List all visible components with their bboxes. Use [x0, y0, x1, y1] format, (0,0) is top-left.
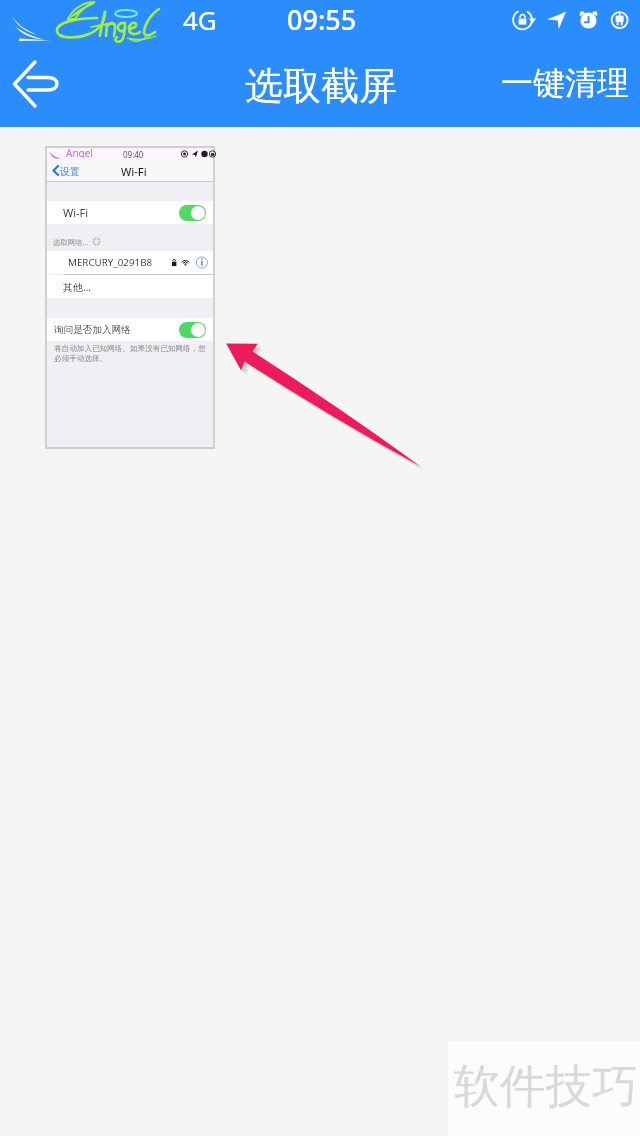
- button[interactable]: Screenshot: Wi-Fi settings: [45, 146, 215, 449]
- staticText: Wi-Fi: [121, 164, 147, 179]
- staticText: 询问是否加入网络: [54, 324, 131, 336]
- staticText: 将自动加入已知网络。如果没有已知网络，您必须手动选择。: [54, 344, 209, 364]
- staticText: 设置: [60, 165, 80, 178]
- staticText: 选取截屏: [245, 62, 397, 110]
- staticText: Wi-Fi: [63, 205, 89, 220]
- staticText: Angel: [66, 146, 93, 158]
- staticText: 一键清理: [501, 63, 629, 103]
- staticText: 软件技巧: [454, 1058, 638, 1116]
- staticText: 09:40: [123, 149, 144, 160]
- button[interactable]: Back: [2, 54, 74, 116]
- staticText: MERCURY_0291B8: [68, 256, 153, 269]
- staticText: 4G: [183, 2, 217, 37]
- staticText: 09:55: [287, 1, 357, 38]
- button[interactable]: [179, 205, 206, 221]
- staticText: 选取网络...: [53, 237, 89, 247]
- staticText: 其他...: [63, 280, 92, 294]
- button[interactable]: 一键清理: [490, 56, 640, 110]
- button[interactable]: [179, 322, 206, 338]
